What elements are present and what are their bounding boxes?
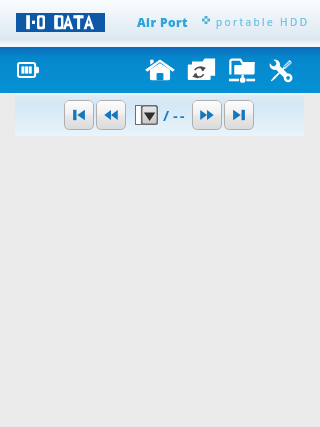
button[interactable]: Home xyxy=(145,56,175,86)
button[interactable]: Tools xyxy=(266,56,296,86)
staticText: Air Port xyxy=(137,14,188,30)
button[interactable]: Select page xyxy=(135,105,158,125)
button[interactable]: Battery xyxy=(17,62,39,78)
staticText: / xyxy=(163,105,170,125)
staticText: portable HDD xyxy=(216,15,310,29)
button[interactable] xyxy=(16,13,105,32)
button[interactable]: Previous page xyxy=(96,100,126,130)
button[interactable]: Last page xyxy=(224,100,254,130)
button[interactable]: Sync folder xyxy=(186,56,216,86)
other: Plus xyxy=(202,16,210,24)
button[interactable]: First page xyxy=(64,100,94,130)
staticText: -- xyxy=(173,105,187,125)
button[interactable]: Next page xyxy=(192,100,222,130)
button[interactable]: Network folder xyxy=(226,56,256,86)
